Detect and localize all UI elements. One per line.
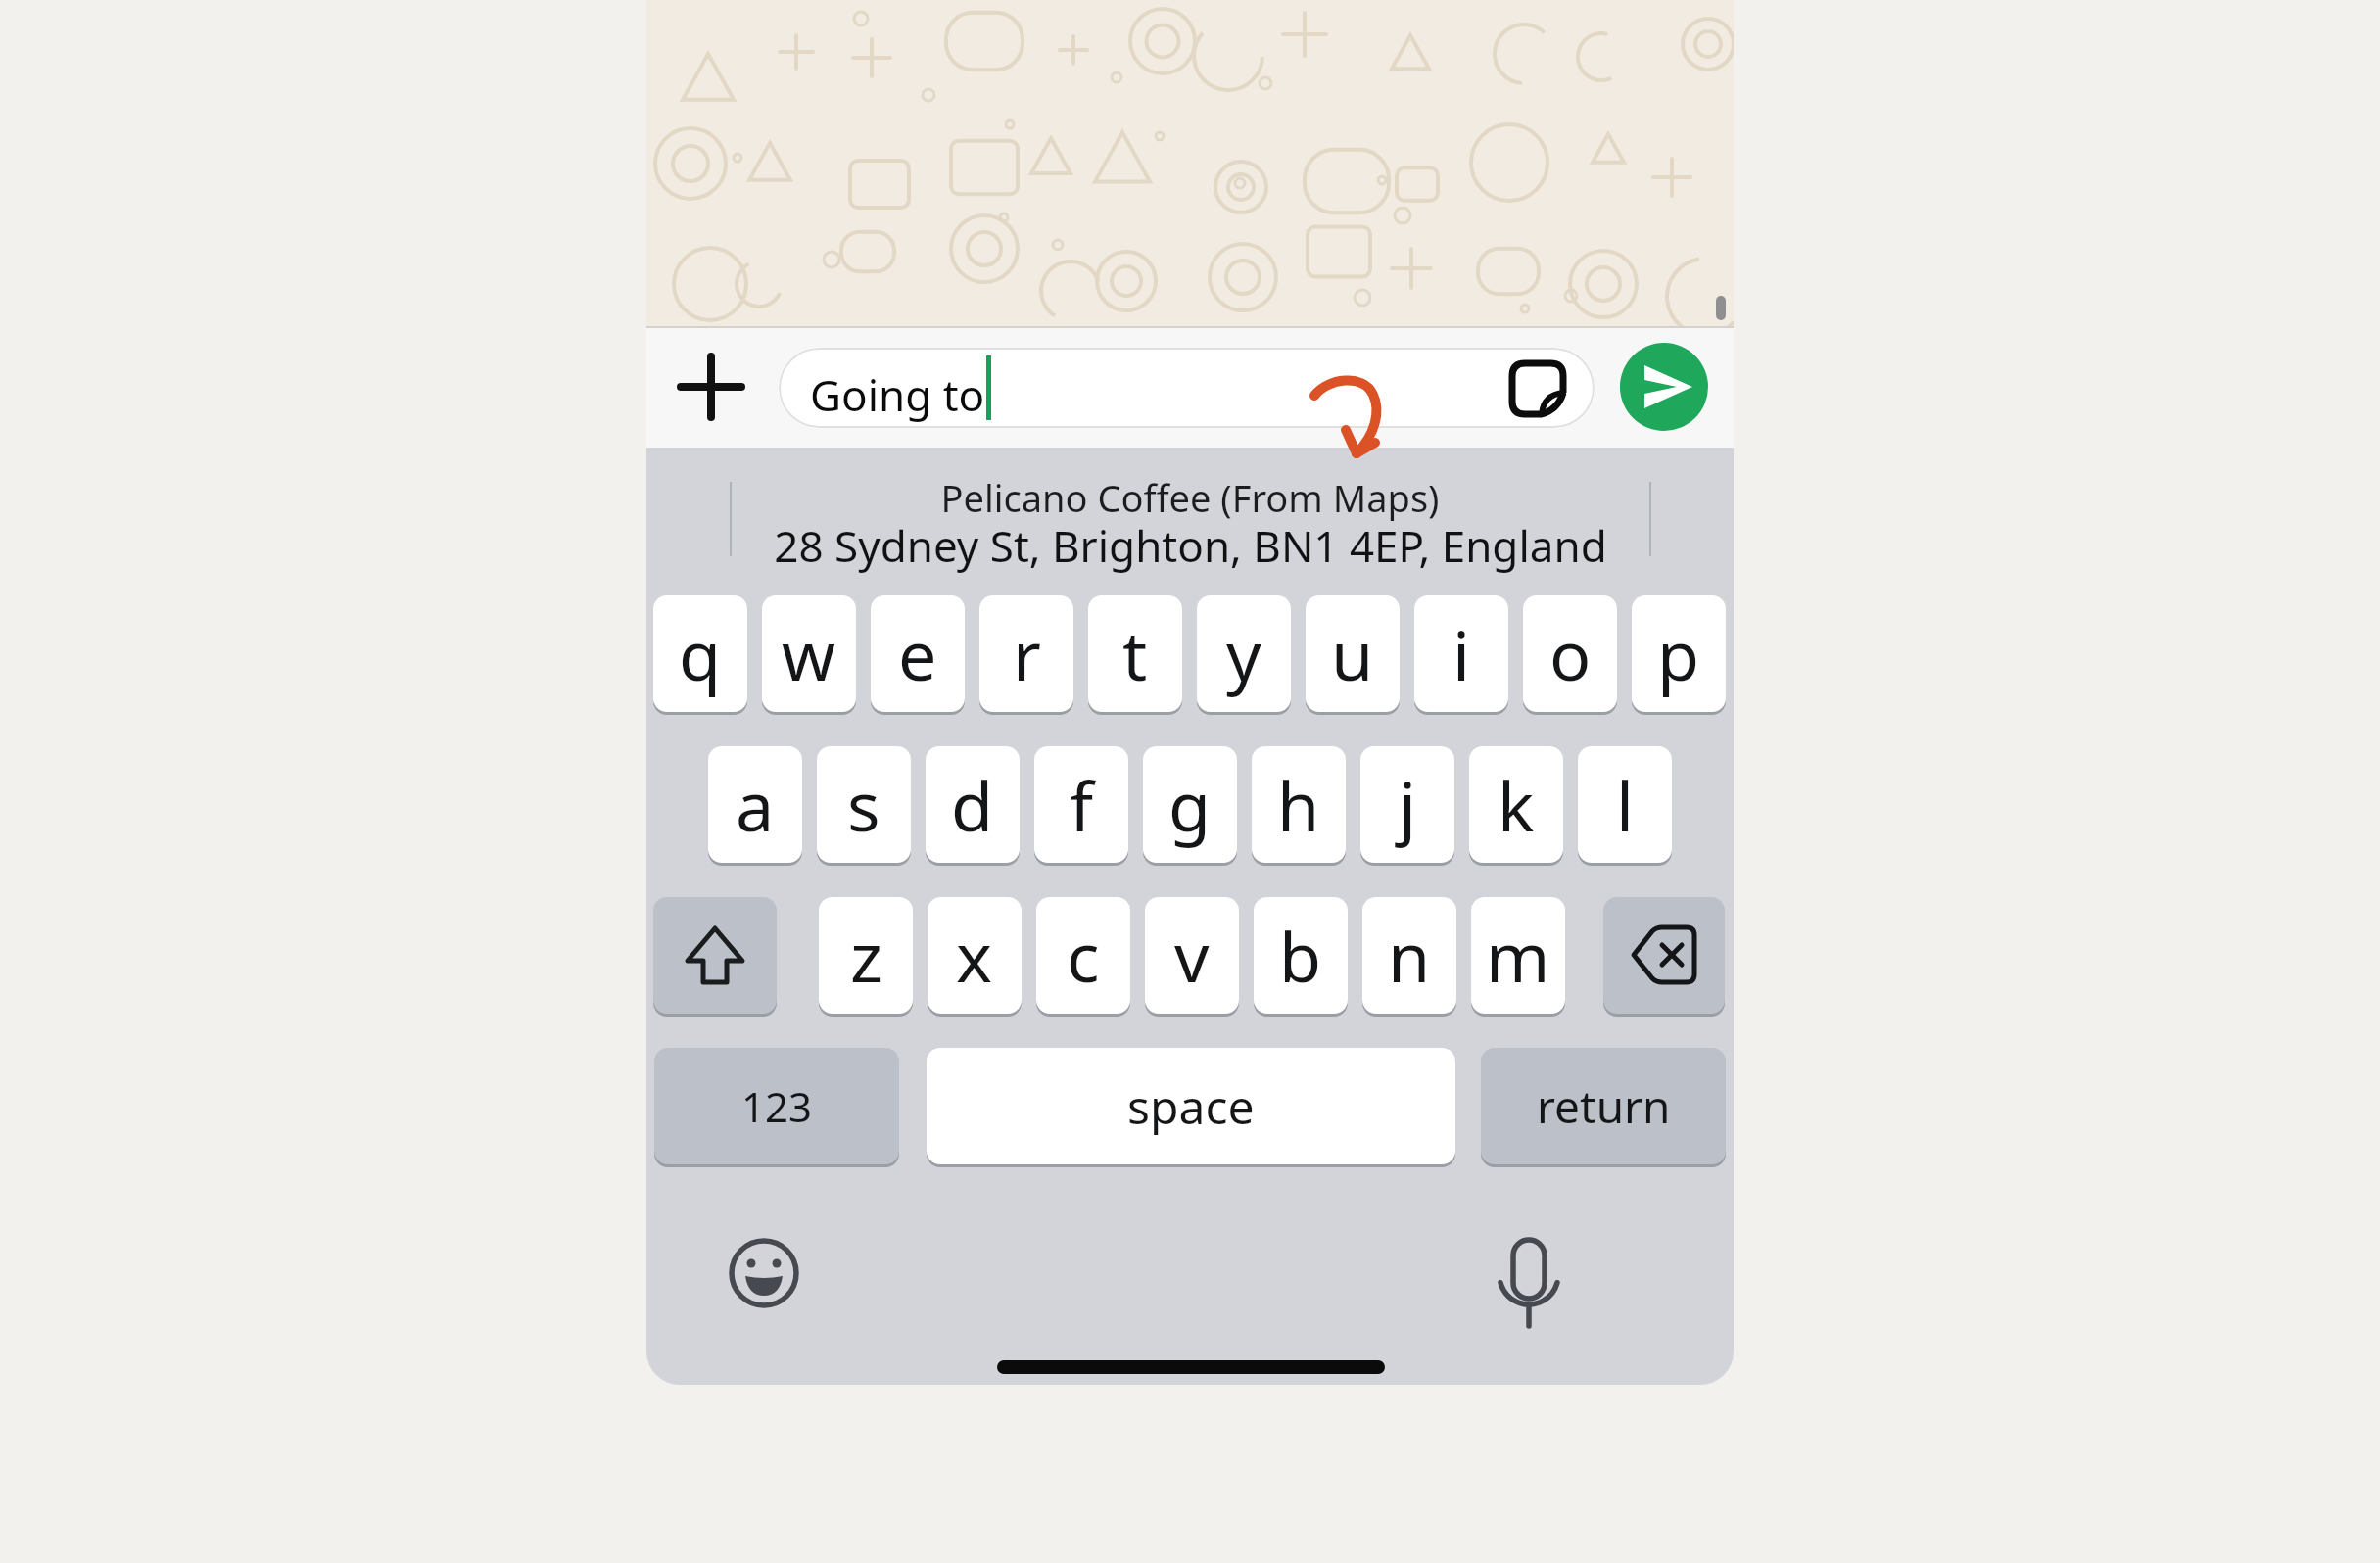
button[interactable]: return bbox=[1481, 1048, 1726, 1164]
staticText: n bbox=[1388, 909, 1431, 1002]
button[interactable]: f bbox=[1034, 746, 1128, 863]
staticText: Going to bbox=[810, 365, 985, 424]
staticText: v bbox=[1174, 909, 1210, 1002]
staticText: l bbox=[1616, 758, 1635, 851]
staticText: w bbox=[782, 607, 836, 700]
button[interactable]: i bbox=[1414, 595, 1508, 712]
staticText: y bbox=[1226, 607, 1261, 700]
button[interactable]: o bbox=[1523, 595, 1617, 712]
button[interactable]: Going to bbox=[779, 348, 1595, 428]
button[interactable]: e bbox=[871, 595, 965, 712]
staticText: i bbox=[1452, 607, 1471, 700]
button[interactable] bbox=[1489, 1234, 1569, 1314]
button[interactable]: 123 bbox=[654, 1048, 899, 1164]
button[interactable]: z bbox=[819, 897, 913, 1014]
button[interactable]: y bbox=[1197, 595, 1291, 712]
button[interactable] bbox=[666, 343, 756, 433]
staticText: h bbox=[1277, 758, 1320, 851]
button[interactable]: m bbox=[1471, 897, 1565, 1014]
staticText: 28 Sydney St, Brighton, BN1 4EP, England bbox=[774, 516, 1607, 575]
button[interactable]: j bbox=[1360, 746, 1454, 863]
button[interactable] bbox=[1603, 897, 1725, 1014]
button[interactable]: s bbox=[817, 746, 911, 863]
button[interactable]: k bbox=[1469, 746, 1563, 863]
staticText: space bbox=[1127, 1074, 1255, 1138]
staticText: k bbox=[1498, 758, 1535, 851]
staticText: 123 bbox=[741, 1078, 813, 1134]
button[interactable]: u bbox=[1306, 595, 1400, 712]
button[interactable]: d bbox=[926, 746, 1020, 863]
button[interactable]: r bbox=[979, 595, 1073, 712]
button[interactable]: w bbox=[762, 595, 856, 712]
staticText: g bbox=[1168, 758, 1212, 851]
staticText: return bbox=[1537, 1075, 1671, 1137]
button[interactable]: a bbox=[708, 746, 802, 863]
button[interactable]: t bbox=[1088, 595, 1182, 712]
staticText: j bbox=[1399, 758, 1417, 851]
button[interactable]: g bbox=[1143, 746, 1237, 863]
button[interactable] bbox=[653, 897, 777, 1014]
button[interactable]: v bbox=[1145, 897, 1239, 1014]
staticText: u bbox=[1331, 607, 1374, 700]
staticText: r bbox=[1013, 607, 1041, 700]
button[interactable]: b bbox=[1254, 897, 1348, 1014]
button[interactable]: n bbox=[1362, 897, 1456, 1014]
button[interactable] bbox=[1620, 343, 1708, 431]
staticText: d bbox=[951, 758, 994, 851]
button[interactable]: space bbox=[927, 1048, 1455, 1164]
button[interactable]: p bbox=[1632, 595, 1726, 712]
staticText: o bbox=[1549, 607, 1592, 700]
staticText: Pelicano Coffee (From Maps) bbox=[940, 472, 1440, 523]
staticText: a bbox=[736, 758, 775, 851]
button[interactable] bbox=[744, 477, 1636, 567]
staticText: e bbox=[898, 607, 937, 700]
staticText: x bbox=[956, 909, 993, 1002]
staticText: z bbox=[850, 909, 882, 1002]
button[interactable]: x bbox=[928, 897, 1022, 1014]
button[interactable]: q bbox=[653, 595, 747, 712]
staticText: b bbox=[1279, 909, 1322, 1002]
staticText: q bbox=[679, 607, 722, 700]
button[interactable]: c bbox=[1036, 897, 1130, 1014]
staticText: t bbox=[1122, 607, 1148, 700]
staticText: s bbox=[847, 758, 881, 851]
staticText: f bbox=[1070, 758, 1094, 851]
button[interactable] bbox=[725, 1234, 803, 1312]
staticText: c bbox=[1067, 909, 1100, 1002]
button[interactable]: h bbox=[1252, 746, 1346, 863]
button[interactable]: l bbox=[1578, 746, 1672, 863]
staticText: p bbox=[1657, 607, 1700, 700]
staticText: m bbox=[1486, 909, 1550, 1002]
